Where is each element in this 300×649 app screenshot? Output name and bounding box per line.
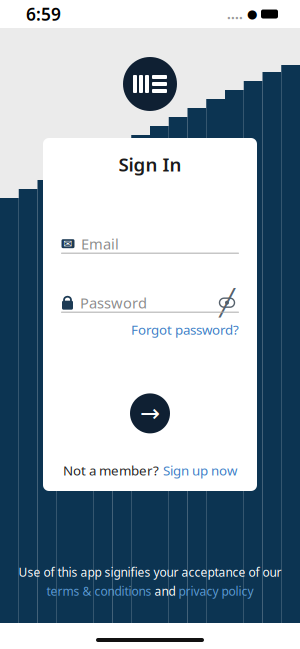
staticText: Not a member? bbox=[63, 461, 159, 479]
button[interactable]: terms & conditions bbox=[46, 583, 151, 599]
staticText: ╱ bbox=[219, 288, 234, 317]
staticText: Password bbox=[80, 293, 147, 312]
button[interactable]: privacy policy bbox=[178, 583, 253, 599]
staticText: 6:59 bbox=[26, 2, 61, 25]
button[interactable]: Show password bbox=[215, 295, 239, 311]
staticText: terms & conditions bbox=[46, 583, 151, 599]
staticText: Use of this app signifies your acceptanc… bbox=[18, 564, 281, 580]
button[interactable]: Forgot password? bbox=[131, 318, 239, 341]
staticText: → bbox=[140, 400, 160, 427]
staticText: privacy policy bbox=[178, 583, 253, 599]
staticText: and bbox=[154, 583, 175, 599]
staticText: .... bbox=[227, 5, 243, 23]
staticText: Forgot password? bbox=[131, 321, 239, 338]
staticText: Sign In bbox=[118, 152, 181, 177]
staticText: ✉ bbox=[63, 238, 72, 250]
staticText: ● bbox=[247, 7, 257, 21]
button[interactable]: Sign in bbox=[130, 393, 170, 433]
staticText: Sign up now bbox=[163, 461, 237, 479]
button[interactable]: Sign up now bbox=[163, 461, 237, 479]
staticText: Email bbox=[81, 234, 119, 253]
